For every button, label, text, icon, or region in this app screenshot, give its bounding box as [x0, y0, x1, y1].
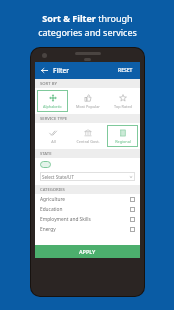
- button[interactable]: Select State/UT: [40, 172, 135, 181]
- button[interactable]: APPLY: [35, 245, 140, 258]
- staticText: Employment and Skills: [40, 216, 91, 223]
- staticText: Select State/UT: [42, 174, 74, 180]
- staticText: categories and services: [38, 26, 137, 38]
- button[interactable]: Agriculture: [35, 194, 140, 204]
- button[interactable]: Regional: [107, 125, 138, 147]
- button[interactable]: All: [37, 125, 68, 147]
- button[interactable]: Most Popular: [72, 90, 103, 112]
- staticText: All: [51, 139, 56, 144]
- staticText: SORT BY: [40, 81, 57, 87]
- staticText: Alphabetic: [43, 104, 62, 109]
- staticText: Regional: [115, 139, 131, 144]
- button[interactable]: Top Rated: [107, 90, 138, 112]
- button[interactable]: Education: [35, 204, 140, 214]
- button[interactable]: Energy: [35, 224, 140, 234]
- staticText: Filter: [53, 66, 69, 75]
- staticText: STATE: [40, 151, 52, 157]
- button[interactable]: Central Govt.: [72, 125, 103, 147]
- staticText: Central Govt.: [76, 139, 100, 144]
- staticText: SERVICE TYPE: [40, 116, 68, 122]
- button[interactable]: RESET: [116, 65, 135, 76]
- staticText: Energy: [40, 226, 56, 233]
- staticText: Most Popular: [76, 104, 100, 109]
- button[interactable]: State chip: [40, 161, 51, 168]
- staticText: Top Rated: [114, 104, 132, 109]
- staticText: CATEGORIES: [40, 187, 65, 193]
- staticText: Agriculture: [40, 196, 66, 203]
- staticText: RESET: [118, 67, 133, 74]
- staticText: Sort & Filter through: [42, 12, 133, 24]
- staticText: Education: [40, 206, 63, 213]
- button[interactable]: Alphabetic: [37, 90, 68, 112]
- button[interactable]: Employment and Skills: [35, 214, 140, 224]
- button[interactable]: Back: [40, 66, 49, 75]
- staticText: APPLY: [79, 248, 96, 255]
